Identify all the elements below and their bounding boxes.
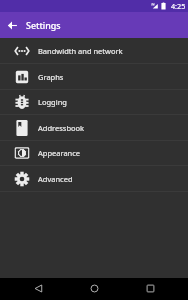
staticText: Settings <box>26 19 61 31</box>
button[interactable]: Back <box>6 19 19 32</box>
button[interactable]: Appearance <box>0 140 188 166</box>
staticText: Bandwidth and network <box>38 46 123 56</box>
button[interactable]: Graphs <box>0 64 188 90</box>
button[interactable]: Back <box>34 284 43 293</box>
button[interactable]: Logging <box>0 89 188 115</box>
staticText: Logging <box>38 97 67 107</box>
button[interactable]: Bandwidth and network <box>0 38 188 64</box>
staticText: Advanced <box>38 174 73 184</box>
staticText: 4:25 <box>171 1 186 11</box>
staticText: Addressbook <box>38 123 85 133</box>
button[interactable]: Addressbook <box>0 115 188 141</box>
button[interactable]: Recent apps <box>146 284 155 293</box>
staticText: Appearance <box>38 148 81 158</box>
staticText: Graphs <box>38 72 64 82</box>
button[interactable]: Advanced <box>0 166 188 192</box>
button[interactable]: Home <box>90 284 99 293</box>
